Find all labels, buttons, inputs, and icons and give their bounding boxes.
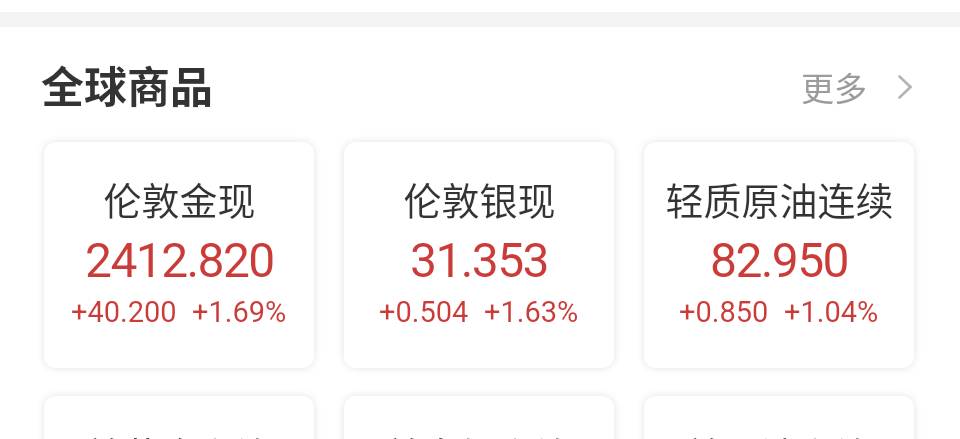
staticText: 82.950: [710, 232, 848, 288]
button[interactable]: 美原油主连: [644, 396, 914, 439]
staticText: +0.850: [679, 295, 769, 329]
staticText: 美白银主连: [384, 426, 575, 439]
staticText: 2412.820: [85, 232, 274, 288]
staticText: +1.63%: [484, 295, 579, 329]
button[interactable]: 美黄金主连: [44, 396, 314, 439]
staticText: +1.04%: [784, 295, 879, 329]
staticText: 美原油主连: [684, 426, 875, 439]
button[interactable]: 更多: [785, 47, 936, 127]
staticText: +1.69%: [192, 295, 287, 329]
staticText: 更多: [801, 63, 867, 111]
button[interactable]: 全球商品: [41, 53, 213, 115]
other: More: [898, 75, 912, 99]
staticText: 美黄金主连: [84, 426, 275, 439]
button[interactable]: 伦敦金现: [44, 142, 314, 368]
staticText: 伦敦金现: [103, 171, 256, 226]
staticText: +0.504: [379, 295, 469, 329]
button[interactable]: 伦敦银现: [344, 142, 614, 368]
staticText: 31.353: [410, 232, 548, 288]
button[interactable]: 美白银主连: [344, 396, 614, 439]
staticText: 轻质原油连续: [665, 171, 894, 226]
staticText: +40.200: [71, 295, 177, 329]
button[interactable]: 轻质原油连续: [644, 142, 914, 368]
staticText: 伦敦银现: [403, 171, 556, 226]
staticText: 全球商品: [41, 53, 213, 115]
